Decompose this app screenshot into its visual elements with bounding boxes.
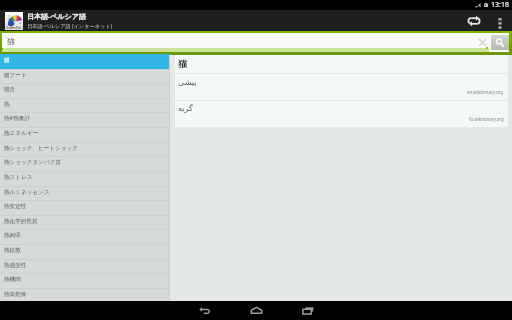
- staticText: 熱気乾燥: [4, 291, 27, 298]
- staticText: en.wiktionary.org: [467, 89, 504, 95]
- staticText: 猫舌: [4, 86, 16, 93]
- button[interactable]: 熱ショックタンパク質: [0, 156, 170, 171]
- button[interactable]: 熱エネルギー: [0, 127, 170, 142]
- staticText: 猫: [4, 57, 10, 64]
- staticText: GoldenDict: [6, 26, 22, 30]
- button[interactable]: 熱気乾燥: [0, 288, 170, 303]
- button[interactable]: Home: [239, 301, 273, 320]
- staticText: 熱ショック、ヒートショック: [4, 145, 79, 152]
- button[interactable]: گربه: [175, 101, 508, 127]
- staticText: 日本語-ペルシア語 (インターネット): [27, 22, 113, 29]
- button[interactable]: Back: [187, 301, 221, 320]
- staticText: 熱機関: [4, 276, 21, 283]
- button[interactable]: 熱感受性: [0, 259, 170, 274]
- staticText: 熱ストレス: [4, 174, 33, 181]
- staticText: 熱ショックタンパク質: [4, 159, 61, 166]
- button[interactable]: 猫: [175, 55, 508, 73]
- button[interactable]: 熱ルミネッセンス: [0, 186, 170, 201]
- staticText: 熱感受性: [4, 262, 27, 269]
- staticText: 熱拡散: [4, 247, 21, 254]
- button[interactable]: 猫: [0, 54, 170, 69]
- staticText: 猫: [178, 58, 187, 69]
- button[interactable]: Search: [491, 35, 509, 50]
- staticText: 13:18: [491, 0, 509, 10]
- button[interactable]: 熱化学的性質: [0, 215, 170, 230]
- button[interactable]: 熱#熱量計: [0, 112, 170, 127]
- staticText: 熱ルミネッセンス: [4, 189, 50, 196]
- button[interactable]: 熱機関: [0, 273, 170, 288]
- staticText: 日本語-ペルシア語: [27, 12, 86, 22]
- staticText: پیشی: [178, 78, 197, 87]
- staticText: 熱安定性: [4, 203, 27, 210]
- button[interactable]: 熱拡散: [0, 244, 170, 259]
- button[interactable]: Recent apps: [291, 301, 325, 320]
- button[interactable]: 熱: [0, 98, 170, 113]
- button[interactable]: پیشی: [175, 74, 508, 100]
- staticText: 熱化学的性質: [4, 218, 38, 225]
- button[interactable]: 熱安定性: [0, 200, 170, 215]
- button[interactable]: Clear query: [475, 33, 489, 52]
- button[interactable]: 熱ショック、ヒートショック: [0, 142, 170, 157]
- staticText: 猫フード: [4, 72, 27, 79]
- button[interactable]: 熱ストレス: [0, 171, 170, 186]
- staticText: 熱回収: [4, 232, 21, 239]
- staticText: 熱エネルギー: [4, 130, 39, 137]
- button[interactable]: 熱回収: [0, 229, 170, 244]
- button[interactable]: Swap dictionary languages: [458, 10, 490, 31]
- staticText: 猫: [7, 36, 15, 46]
- staticText: fa.wiktionary.org: [469, 116, 504, 122]
- staticText: 熱: [4, 101, 10, 108]
- button[interactable]: More options: [490, 10, 510, 31]
- button[interactable]: 猫フード: [0, 69, 170, 84]
- button[interactable]: 猫舌: [0, 83, 170, 98]
- staticText: 熱#熱量計: [4, 114, 30, 122]
- staticText: گربه: [178, 104, 193, 113]
